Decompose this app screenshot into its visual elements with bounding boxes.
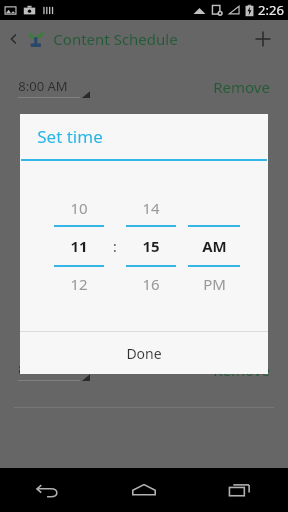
staticText: AM [202,236,227,256]
button[interactable]: 14 [126,191,176,301]
button[interactable]: Done [20,332,268,374]
staticText: : [113,237,117,256]
staticText: 11 [70,236,88,256]
staticText: Content Schedule [53,29,178,49]
staticText: 12 [70,274,88,294]
button[interactable]: AM [188,191,240,301]
staticText: Set time [37,125,103,148]
staticText: 16 [142,274,160,294]
button[interactable]: Recent apps [192,468,288,512]
staticText: 10 [70,198,88,218]
staticText: 14 [142,198,160,218]
staticText: Done [126,344,162,363]
staticText: PM [203,274,226,294]
staticText: 8:00 AM [18,360,68,378]
button[interactable]: 10 [54,191,104,301]
button[interactable]: Home [96,468,192,512]
staticText: 15 [142,236,160,256]
staticText: Remove [213,360,270,380]
button[interactable]: Back [0,468,96,512]
staticText: 2:26 [258,1,284,19]
button[interactable]: Add [248,24,278,54]
staticText: 8:00 AM [18,77,68,95]
staticText: Remove [213,77,270,97]
button[interactable]: Back [6,31,22,47]
